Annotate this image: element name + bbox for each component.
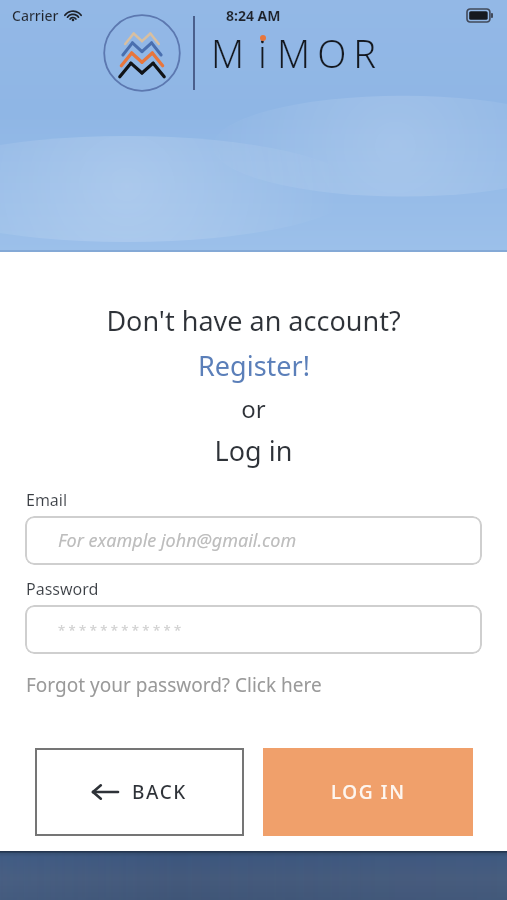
staticText: LOG IN	[331, 779, 406, 805]
button[interactable]: Forgot your password? Click here	[26, 672, 322, 698]
staticText: * * * * * * * * * * * *	[58, 621, 182, 639]
staticText: M	[211, 27, 252, 79]
staticText: Register!	[198, 347, 310, 384]
staticText: i	[258, 27, 267, 79]
button[interactable]: Register!	[0, 347, 507, 384]
staticText: Carrier	[12, 6, 59, 25]
staticText: 8:24 AM	[226, 6, 281, 25]
staticText: Password	[26, 578, 99, 600]
staticText: or	[0, 392, 507, 425]
staticText: Don't have an account?	[0, 302, 507, 339]
staticText: Forgot your password? Click here	[26, 672, 322, 698]
button[interactable]: Back	[35, 748, 244, 836]
button[interactable]: For example john@gmail.com	[25, 516, 482, 565]
staticText: Email	[26, 489, 68, 511]
other: Back	[92, 784, 118, 800]
staticText: For example john@gmail.com	[58, 528, 297, 553]
button[interactable]: * * * * * * * * * * * *	[25, 605, 482, 654]
staticText: BACK	[132, 779, 187, 805]
staticText: Log in	[0, 432, 507, 469]
staticText: MOR	[277, 27, 384, 79]
button[interactable]: LOG IN	[263, 748, 473, 836]
